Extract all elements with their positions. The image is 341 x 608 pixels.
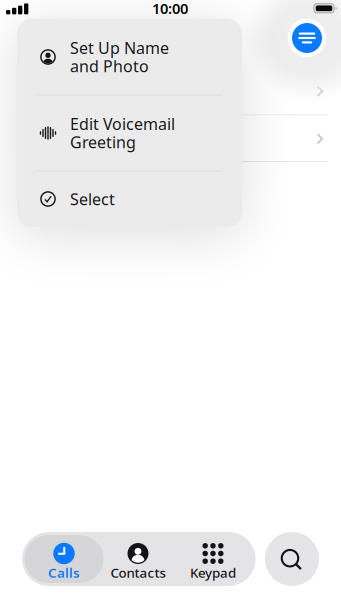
staticText: Keypad	[190, 564, 236, 581]
button[interactable]: Call entry	[0, 115, 341, 161]
button[interactable]: Select	[17, 171, 242, 227]
staticText: Set Up Name	[70, 37, 169, 58]
button[interactable]: Edit Voicemail	[17, 95, 242, 171]
button[interactable]: Search	[265, 532, 319, 586]
button[interactable]: Call entry	[0, 68, 341, 115]
staticText: Select	[70, 188, 115, 210]
button[interactable]: Contacts	[100, 535, 176, 583]
button[interactable]: Set Up Name	[17, 19, 242, 95]
button[interactable]: Filter	[288, 19, 326, 57]
button[interactable]: Keypad	[175, 535, 251, 583]
button[interactable]: Calls	[24, 535, 103, 583]
staticText: Calls	[48, 564, 80, 581]
staticText: 10:00	[152, 0, 188, 18]
staticText: and Photo	[70, 55, 149, 77]
staticText: Edit Voicemail	[70, 113, 175, 134]
staticText: Greeting	[70, 131, 136, 153]
staticText: Contacts	[110, 564, 165, 581]
